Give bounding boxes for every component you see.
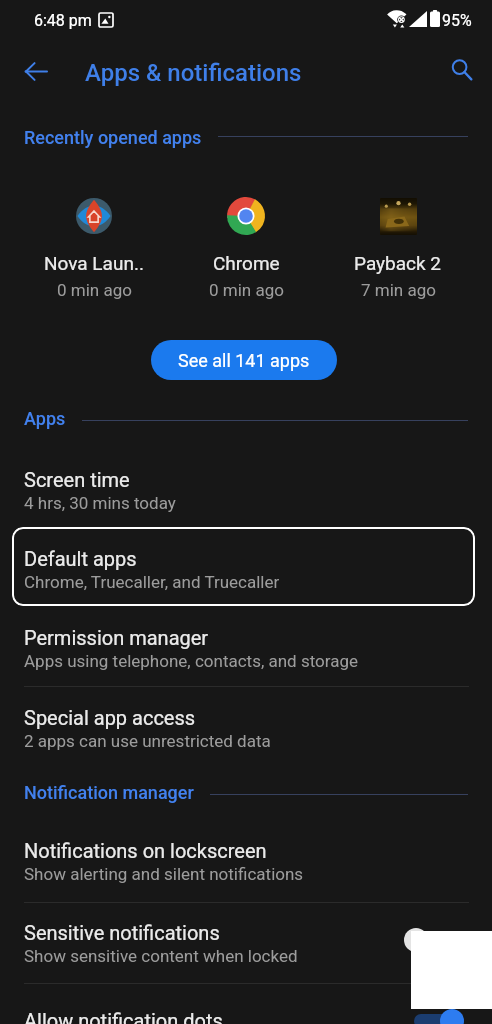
button[interactable]: Payback 2 xyxy=(322,197,474,300)
staticText: See all 141 apps xyxy=(178,350,310,371)
staticText: Show sensitive content when locked xyxy=(24,946,298,966)
staticText: Chrome xyxy=(213,252,280,274)
button[interactable]: Special app access xyxy=(0,706,492,751)
staticText: 7 min ago xyxy=(361,280,436,300)
button[interactable]: See all 141 apps xyxy=(151,340,337,380)
staticText: Screen time xyxy=(24,468,130,491)
staticText: Sensitive notifications xyxy=(24,921,220,944)
staticText: 2 apps can use unrestricted data xyxy=(24,731,271,751)
staticText: Apps using telephone, contacts, and stor… xyxy=(24,651,359,671)
staticText: Apps & notifications xyxy=(85,59,302,87)
staticText: 0 min ago xyxy=(57,280,132,300)
button[interactable]: Search xyxy=(440,48,484,92)
staticText: Recently opened apps xyxy=(24,127,202,148)
staticText: Notification manager xyxy=(24,782,194,803)
staticText: Default apps xyxy=(24,547,137,570)
button[interactable]: Permission manager xyxy=(0,626,492,671)
staticText: Apps xyxy=(24,408,66,429)
button[interactable]: Nova Laun.. xyxy=(18,197,170,300)
button[interactable]: Notifications on lockscreen xyxy=(0,839,492,884)
staticText: 0 min ago xyxy=(209,280,284,300)
button[interactable]: Toggle Sensitive notifications xyxy=(382,922,450,958)
staticText: Special app access xyxy=(24,706,196,729)
staticText: Permission manager xyxy=(24,626,209,649)
button[interactable]: Toggle Allow notification dots xyxy=(418,1003,486,1024)
staticText: Allow notification dots xyxy=(24,1009,223,1024)
staticText: 6:48 pm xyxy=(34,11,92,30)
button[interactable]: Back xyxy=(13,48,59,94)
staticText: Nova Laun.. xyxy=(44,252,144,274)
button[interactable]: Sensitive notifications xyxy=(0,921,492,966)
button[interactable]: Chrome xyxy=(170,197,322,300)
staticText: Payback 2 xyxy=(354,252,442,274)
staticText: 95% xyxy=(442,11,472,30)
staticText: Show alerting and silent notifications xyxy=(24,864,304,884)
button[interactable]: Screen time xyxy=(0,468,492,513)
staticText: Chrome, Truecaller, and Truecaller xyxy=(24,572,280,592)
button[interactable]: Default apps xyxy=(12,527,475,606)
staticText: 4 hrs, 30 mins today xyxy=(24,493,176,513)
staticText: Notifications on lockscreen xyxy=(24,839,267,862)
button[interactable]: Allow notification dots xyxy=(0,1009,492,1024)
